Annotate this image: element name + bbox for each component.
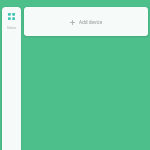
staticText: Devices: [7, 26, 17, 30]
staticText: Add device: [79, 19, 103, 25]
button[interactable]: Add device: [66, 16, 107, 28]
button[interactable]: Devices: [4, 9, 19, 24]
